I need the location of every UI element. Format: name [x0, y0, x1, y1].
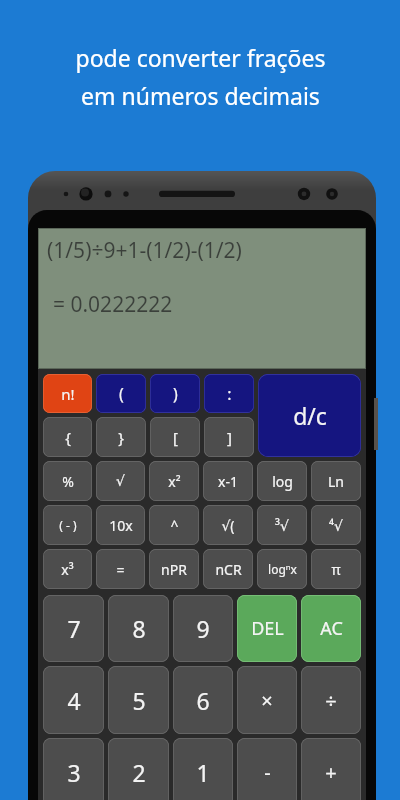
- button[interactable]: x³: [43, 549, 92, 589]
- button[interactable]: =: [96, 549, 145, 589]
- staticText: n!: [61, 384, 75, 404]
- staticText: =: [116, 560, 125, 579]
- staticText: ( - ): [59, 517, 77, 533]
- button[interactable]: logⁿx: [257, 549, 307, 589]
- staticText: }: [118, 427, 124, 447]
- staticText: 1: [196, 757, 210, 788]
- button[interactable]: ×: [237, 666, 297, 734]
- button[interactable]: 2: [108, 738, 169, 800]
- button[interactable]: n!: [43, 374, 92, 413]
- staticText: -: [264, 759, 271, 786]
- button[interactable]: d/c: [258, 374, 361, 457]
- button[interactable]: AC: [301, 595, 361, 662]
- button[interactable]: 6: [173, 666, 233, 734]
- button[interactable]: 10x: [96, 505, 145, 545]
- staticText: (1/5)÷9+1-(1/2)-(1/2): [47, 236, 242, 265]
- staticText: 3: [67, 757, 81, 788]
- button[interactable]: [: [150, 417, 200, 457]
- staticText: log: [272, 472, 293, 491]
- staticText: em números decimais: [81, 80, 320, 111]
- button[interactable]: x²: [149, 461, 199, 501]
- button[interactable]: -: [237, 738, 297, 800]
- button[interactable]: ( - ): [43, 505, 92, 545]
- staticText: {: [65, 427, 71, 447]
- staticText: %: [62, 472, 74, 491]
- staticText: ]: [227, 427, 232, 447]
- button[interactable]: nCR: [203, 549, 253, 589]
- staticText: = 0.0222222: [53, 290, 173, 319]
- button[interactable]: x-1: [203, 461, 253, 501]
- button[interactable]: 9: [173, 595, 233, 662]
- button[interactable]: 4: [43, 666, 104, 734]
- staticText: 5: [132, 685, 146, 716]
- button[interactable]: +: [301, 738, 361, 800]
- button[interactable]: DEL: [237, 595, 297, 662]
- staticText: 2: [132, 757, 146, 788]
- staticText: ⁴√: [329, 516, 343, 535]
- staticText: x²: [168, 472, 181, 491]
- staticText: 10x: [109, 516, 133, 535]
- button[interactable]: nPR: [149, 549, 199, 589]
- staticText: logⁿx: [268, 561, 297, 577]
- staticText: nPR: [161, 560, 187, 579]
- button[interactable]: √: [96, 461, 145, 501]
- staticText: √: [116, 473, 125, 489]
- button[interactable]: 1: [173, 738, 233, 800]
- button[interactable]: (: [96, 374, 146, 413]
- button[interactable]: π: [311, 549, 361, 589]
- button[interactable]: ÷: [301, 666, 361, 734]
- staticText: nCR: [215, 560, 242, 579]
- button[interactable]: 8: [108, 595, 169, 662]
- button[interactable]: 7: [43, 595, 104, 662]
- button[interactable]: {: [43, 417, 92, 457]
- staticText: +: [325, 759, 337, 786]
- staticText: π: [331, 560, 341, 579]
- button[interactable]: log: [257, 461, 307, 501]
- staticText: 9: [196, 613, 210, 644]
- staticText: [: [173, 427, 178, 447]
- staticText: 8: [132, 613, 146, 644]
- button[interactable]: ]: [204, 417, 254, 457]
- staticText: ×: [261, 687, 273, 714]
- button[interactable]: 3: [43, 738, 104, 800]
- button[interactable]: }: [96, 417, 146, 457]
- button[interactable]: :: [204, 374, 254, 413]
- staticText: ^: [170, 516, 179, 535]
- staticText: :: [227, 383, 232, 405]
- staticText: ÷: [325, 687, 337, 714]
- staticText: (: [119, 383, 124, 405]
- staticText: ): [173, 383, 178, 405]
- button[interactable]: %: [43, 461, 92, 501]
- staticText: Ln: [328, 472, 344, 491]
- staticText: pode converter frações: [75, 42, 326, 73]
- staticText: 7: [67, 613, 81, 644]
- button[interactable]: ^: [149, 505, 199, 545]
- button[interactable]: ³√: [257, 505, 307, 545]
- button[interactable]: Ln: [311, 461, 361, 501]
- staticText: ³√: [275, 516, 289, 535]
- staticText: AC: [320, 616, 343, 641]
- staticText: x³: [61, 560, 74, 579]
- button[interactable]: 5: [108, 666, 169, 734]
- staticText: x-1: [218, 472, 238, 491]
- staticText: √(: [221, 516, 235, 535]
- staticText: 4: [67, 685, 81, 716]
- staticText: 6: [196, 685, 210, 716]
- button[interactable]: √(: [203, 505, 253, 545]
- staticText: DEL: [251, 616, 284, 641]
- button[interactable]: ): [150, 374, 200, 413]
- button[interactable]: ⁴√: [311, 505, 361, 545]
- staticText: d/c: [293, 400, 327, 431]
